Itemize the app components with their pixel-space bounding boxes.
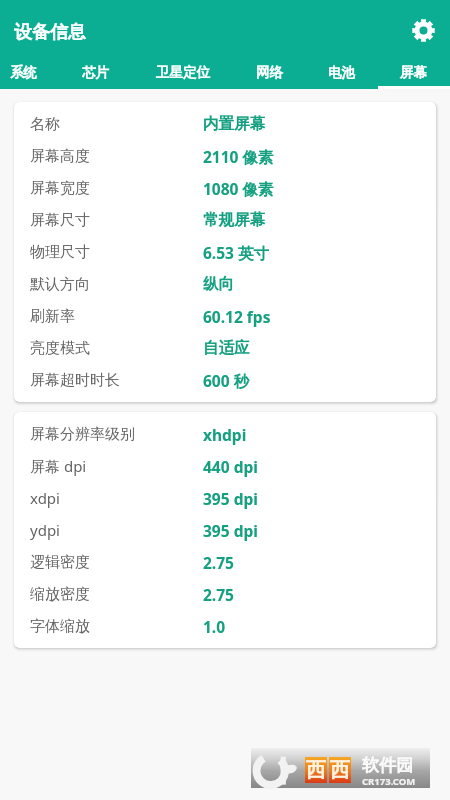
- staticText: 逻辑密度: [30, 553, 90, 572]
- staticText: 屏幕分辨率级别: [30, 425, 135, 444]
- staticText: 2.75: [203, 584, 234, 605]
- button[interactable]: 系统: [0, 55, 59, 89]
- button[interactable]: 缩放密度: [14, 578, 436, 610]
- staticText: 屏幕超时时长: [30, 371, 120, 390]
- staticText: 西: [306, 758, 326, 783]
- button[interactable]: ydpi: [14, 514, 436, 546]
- staticText: xdpi: [30, 488, 60, 508]
- button[interactable]: 名称: [14, 108, 436, 140]
- button[interactable]: 亮度模式: [14, 332, 436, 364]
- staticText: 物理尺寸: [30, 243, 90, 262]
- staticText: 6.53 英寸: [203, 242, 269, 263]
- staticText: 网络: [256, 64, 283, 81]
- staticText: 名称: [30, 115, 60, 134]
- button[interactable]: 电池: [305, 55, 377, 89]
- button[interactable]: 屏幕高度: [14, 140, 436, 172]
- staticText: 屏幕 dpi: [30, 456, 87, 476]
- staticText: 系统: [10, 64, 37, 81]
- staticText: 西: [330, 758, 350, 783]
- staticText: 亮度模式: [30, 339, 90, 358]
- button[interactable]: 字体缩放: [14, 610, 436, 642]
- staticText: 2110 像素: [203, 146, 274, 167]
- staticText: 常规屏幕: [203, 210, 265, 230]
- button[interactable]: Settings: [399, 6, 447, 54]
- staticText: 芯片: [82, 64, 109, 81]
- staticText: 默认方向: [30, 275, 90, 294]
- button[interactable]: 屏幕: [377, 55, 449, 89]
- button[interactable]: 芯片: [59, 55, 132, 89]
- staticText: 内置屏幕: [203, 114, 265, 134]
- button[interactable]: 屏幕尺寸: [14, 204, 436, 236]
- button[interactable]: 屏幕 dpi: [14, 450, 436, 482]
- staticText: 自适应: [203, 338, 250, 358]
- staticText: 字体缩放: [30, 617, 90, 636]
- button[interactable]: 刷新率: [14, 300, 436, 332]
- staticText: 屏幕尺寸: [30, 211, 90, 230]
- staticText: xhdpi: [203, 424, 247, 445]
- staticText: ydpi: [30, 520, 60, 540]
- button[interactable]: 网络: [233, 55, 305, 89]
- staticText: 1.0: [203, 616, 226, 637]
- button[interactable]: 逻辑密度: [14, 546, 436, 578]
- staticText: 600 秒: [203, 370, 250, 391]
- staticText: 电池: [328, 64, 355, 81]
- staticText: 软件园: [362, 755, 413, 776]
- staticText: 395 dpi: [203, 520, 258, 541]
- button[interactable]: 默认方向: [14, 268, 436, 300]
- staticText: 屏幕: [400, 64, 427, 81]
- staticText: 纵向: [203, 274, 234, 294]
- button[interactable]: 卫星定位: [132, 55, 233, 89]
- button[interactable]: 物理尺寸: [14, 236, 436, 268]
- button[interactable]: xdpi: [14, 482, 436, 514]
- button[interactable]: 屏幕超时时长: [14, 364, 436, 396]
- button[interactable]: 屏幕分辨率级别: [14, 418, 436, 450]
- staticText: 设备信息: [14, 21, 86, 44]
- staticText: 60.12 fps: [203, 306, 271, 327]
- staticText: CR173.COM: [362, 775, 416, 788]
- staticText: 卫星定位: [156, 64, 210, 81]
- staticText: 2.75: [203, 552, 234, 573]
- staticText: 刷新率: [30, 307, 75, 326]
- staticText: 屏幕高度: [30, 147, 90, 166]
- staticText: 屏幕宽度: [30, 179, 90, 198]
- staticText: 395 dpi: [203, 488, 258, 509]
- staticText: 缩放密度: [30, 585, 90, 604]
- button[interactable]: 屏幕宽度: [14, 172, 436, 204]
- staticText: 440 dpi: [203, 456, 258, 477]
- staticText: 1080 像素: [203, 178, 274, 199]
